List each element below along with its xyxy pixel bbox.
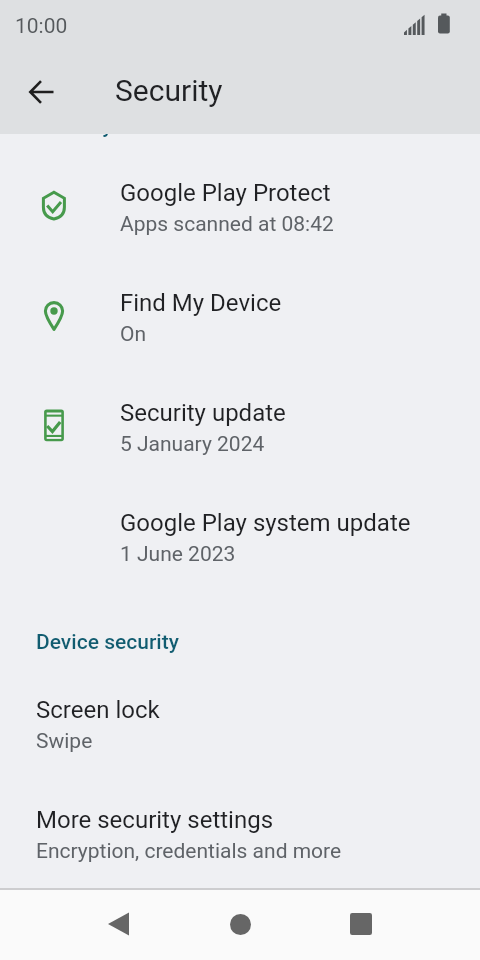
staticText: Google Play Protect — [120, 179, 331, 207]
staticText: Swipe — [36, 729, 93, 754]
button[interactable]: Navigate up — [18, 68, 66, 116]
staticText: Find My Device — [120, 289, 282, 317]
staticText: Apps scanned at 08:42 — [120, 212, 334, 237]
button[interactable]: Screen lock — [0, 670, 480, 780]
staticText: 1 June 2023 — [120, 542, 236, 567]
button[interactable]: Google Play system update — [0, 483, 480, 593]
staticText: 5 January 2024 — [120, 432, 265, 457]
staticText: More security settings — [36, 806, 274, 834]
staticText: 10:00 — [15, 14, 68, 39]
staticText: Device security — [36, 630, 179, 655]
button[interactable]: Security update — [0, 373, 480, 483]
staticText: Security status — [36, 114, 177, 139]
staticText: Encryption, credentials and more — [36, 839, 342, 864]
staticText: Security update — [120, 399, 286, 427]
staticText: Google Play system update — [120, 509, 411, 537]
staticText: On — [120, 322, 147, 347]
button[interactable]: Google Play Protect — [0, 153, 480, 263]
button[interactable]: Back — [78, 889, 159, 959]
staticText: Screen lock — [36, 696, 160, 724]
button[interactable]: Find My Device — [0, 263, 480, 373]
staticText: Security — [115, 73, 223, 108]
button[interactable]: Home — [200, 889, 280, 959]
button[interactable]: Recent apps — [320, 889, 401, 959]
button[interactable]: More security settings — [0, 780, 480, 890]
